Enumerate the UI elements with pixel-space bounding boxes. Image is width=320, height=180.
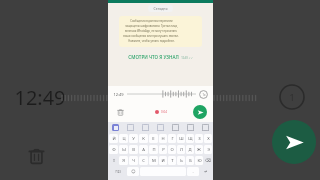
button[interactable]: Р [159,145,167,154]
staticText: Э [207,147,210,153]
staticText: Ж [197,147,201,153]
button[interactable]: ↵ [200,167,212,176]
button[interactable]: Ы [119,145,128,154]
staticText: 1 [289,91,295,103]
staticText: Ы [122,147,126,153]
staticText: ⌫ [205,158,211,163]
staticText: 12:49 ✓✓ [181,56,193,60]
staticText: Р [162,147,165,153]
button[interactable]: Send [193,105,207,119]
button[interactable]: ?123 [109,167,126,176]
staticText: ↵ [204,169,208,174]
button[interactable]: Е [149,134,158,143]
staticText: ваши сообщения или прослушать звонки. [123,34,179,38]
staticText: СМОТРИ ЧТО Я УЗНАЛ [128,54,179,60]
staticText: У [132,136,135,142]
button[interactable]: Ш [177,134,185,143]
staticText: С [142,158,145,164]
button[interactable]: ☺ [127,167,139,176]
button[interactable]: З [195,134,203,143]
button[interactable]: Щ [186,134,194,143]
button[interactable]: Playback speed [199,90,208,99]
button[interactable]: ⌫ [204,156,212,165]
staticText: Й [112,136,116,142]
staticText: 0:04 [161,110,167,114]
staticText: М [152,158,156,164]
staticText: включая WhatsApp, не могут прочитать [125,29,177,33]
button[interactable]: Delete recording [115,107,126,118]
button[interactable]: У [129,134,138,143]
button[interactable]: Э [204,145,212,154]
button[interactable]: Stickers [187,124,194,131]
button[interactable]: И [159,156,167,165]
staticText: Ю [197,158,202,164]
staticText: ☺ [131,169,136,174]
staticText: Ч [132,158,135,164]
button[interactable]: С [139,156,148,165]
button[interactable]: А [139,145,148,154]
staticText: Т [171,158,174,164]
button[interactable]: Д [186,145,194,154]
staticText: Г [171,136,174,142]
button[interactable]: Settings [172,124,179,131]
button[interactable]: П [149,145,158,154]
button[interactable]: Ь [177,156,185,165]
staticText: З [198,136,201,142]
staticText: 1x [202,93,206,97]
staticText: И [161,158,165,164]
button[interactable]: Л [177,145,185,154]
button[interactable]: Keyboard themes [112,124,119,131]
staticText: Я [122,158,125,164]
staticText: Сегодня [153,6,168,11]
button[interactable]: Г [168,134,176,143]
staticText: ?123 [115,170,121,174]
staticText: Н [161,136,165,142]
staticText: Ш [179,136,184,142]
button[interactable]: Ю [195,156,203,165]
staticText: Щ [188,136,193,142]
button[interactable]: Я [119,156,128,165]
staticText: . [192,169,194,175]
staticText: В [132,147,135,153]
staticText: К [142,136,145,142]
button[interactable]: Voice input [202,124,209,131]
button[interactable]: Й [109,134,118,143]
button[interactable]: Ч [129,156,138,165]
staticText: Ц [122,136,126,142]
staticText: Нажмите, чтобы узнать подробнее. [128,39,175,43]
staticText: Е [152,136,155,142]
button[interactable]: ⇧ [109,156,118,165]
staticText: О [170,147,174,153]
button[interactable]: Ж [195,145,203,154]
staticText: П [152,147,156,153]
button[interactable]: Н [159,134,167,143]
staticText: Ф [112,147,116,153]
staticText: Ь [180,158,183,164]
button[interactable]: GIF [127,124,134,131]
button[interactable]: Clipboard [142,124,149,131]
staticText: Сообщения в данном переписке [130,19,173,23]
button[interactable]: В [129,145,138,154]
staticText: 12:49 [14,84,66,111]
staticText: Д [188,147,192,153]
staticText: защищены шифрованием. Третьи лица, [125,24,178,28]
button[interactable]: Т [168,156,176,165]
button[interactable]: Playback speed 1x [279,84,305,110]
staticText: А [142,147,145,153]
staticText: 12:49 [113,92,124,97]
button[interactable]: Ф [109,145,118,154]
button[interactable]: К [139,134,148,143]
button[interactable]: Delete recording [24,144,48,168]
button[interactable]: Ц [119,134,128,143]
staticText: Л [180,147,183,153]
button[interactable]: Translate [157,124,164,131]
staticText: ⇧ [112,158,116,163]
button[interactable]: Б [186,156,194,165]
button[interactable]: Send voice message [272,120,316,164]
button[interactable]: О [168,145,176,154]
staticText: Б [189,158,192,164]
button[interactable]: М [149,156,158,165]
button[interactable]: Х [204,134,212,143]
